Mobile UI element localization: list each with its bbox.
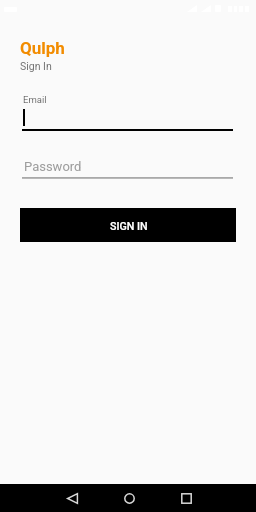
staticText: SIGN IN [110,220,148,233]
button[interactable]: SIGN IN [20,208,236,242]
button[interactable]: Password input field [22,157,233,180]
staticText: Sign In [20,60,52,72]
staticText: Password [24,159,82,174]
button[interactable]: Recent apps [172,484,200,512]
button[interactable]: Email input field [22,106,233,131]
button[interactable]: Home [115,484,143,512]
staticText: Email [23,94,47,105]
button[interactable]: Back [58,484,86,512]
staticText: Qulph [20,38,65,58]
